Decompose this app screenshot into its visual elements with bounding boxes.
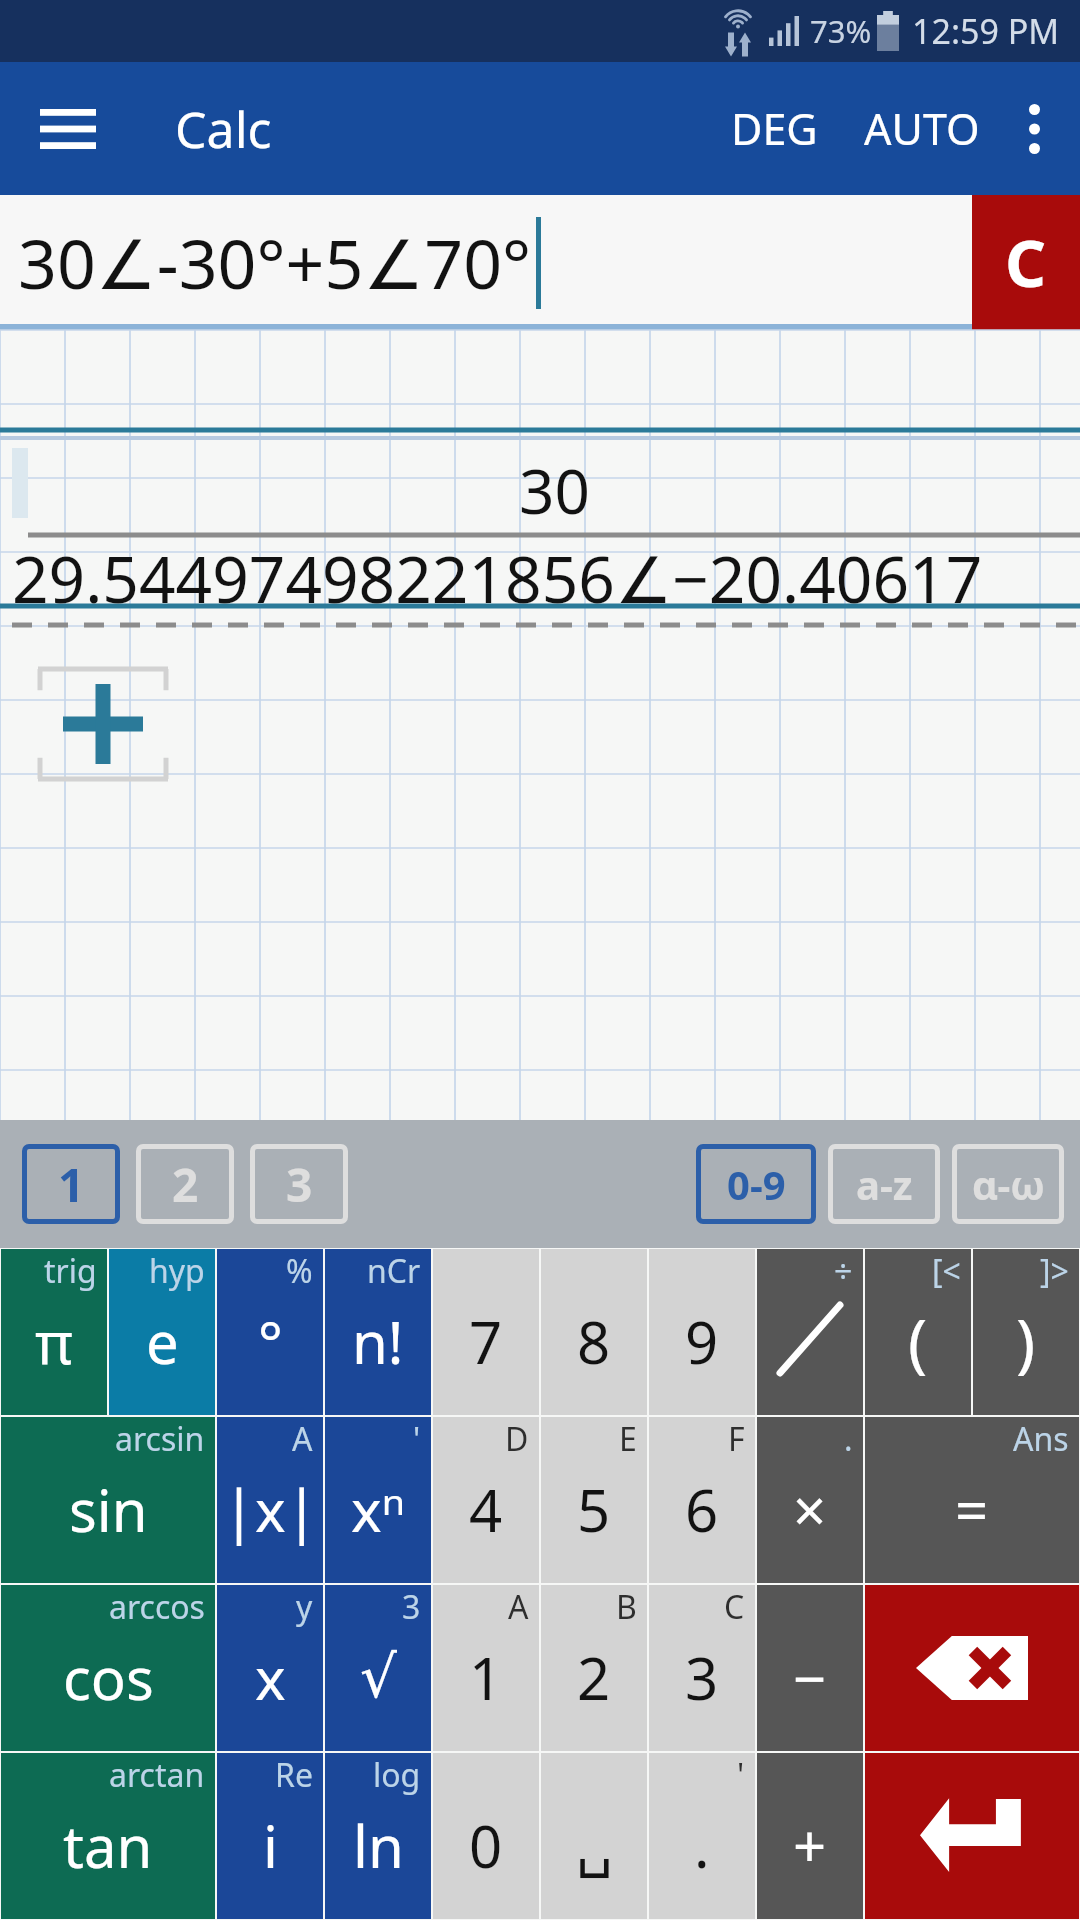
button[interactable]: Open navigation menu — [22, 83, 114, 175]
button[interactable]: ]> — [973, 1249, 1079, 1415]
button[interactable]: A — [433, 1585, 539, 1751]
staticText: hyp — [149, 1249, 205, 1293]
button[interactable]: 0-9 — [696, 1144, 816, 1224]
staticText: + — [793, 1806, 827, 1885]
button[interactable]: D — [433, 1417, 539, 1583]
staticText: E — [619, 1417, 637, 1461]
button[interactable]: 3 — [325, 1585, 431, 1751]
staticText: A — [292, 1417, 313, 1461]
staticText: 29.54497498221856∠−20.40617 — [12, 535, 983, 622]
staticText: 0 — [469, 1806, 503, 1885]
button[interactable]: log — [325, 1753, 431, 1919]
staticText: Ans — [1013, 1417, 1069, 1461]
button[interactable]: C — [972, 195, 1080, 330]
button[interactable]: nCr — [325, 1249, 431, 1415]
staticText: ]> — [1040, 1249, 1069, 1293]
staticText: cos — [63, 1638, 154, 1717]
staticText: arcsin — [115, 1417, 205, 1461]
staticText: 2 — [172, 1153, 199, 1216]
staticText: 8 — [577, 1302, 611, 1381]
button[interactable]: trig — [1, 1249, 107, 1415]
staticText: ln — [353, 1806, 404, 1885]
staticText: 0-9 — [727, 1157, 786, 1211]
staticText: ÷ — [834, 1249, 853, 1293]
button[interactable]: + — [757, 1753, 863, 1919]
button[interactable]: More options — [994, 89, 1074, 169]
staticText: √ — [360, 1643, 397, 1711]
button[interactable]: ␣ — [541, 1753, 647, 1919]
staticText: 1 — [58, 1153, 85, 1216]
staticText: a-z — [856, 1157, 913, 1211]
staticText: [< — [932, 1249, 961, 1293]
button[interactable]: 1 — [22, 1144, 120, 1224]
button[interactable]: 3 — [250, 1144, 348, 1224]
staticText: n! — [352, 1302, 404, 1381]
button[interactable]: − — [757, 1585, 863, 1751]
staticText: 30∠-30°+5∠70° — [18, 216, 532, 309]
staticText: DEG — [731, 99, 818, 158]
button[interactable]: ' — [325, 1417, 431, 1583]
button[interactable]: B — [541, 1585, 647, 1751]
staticText: C — [1005, 219, 1047, 306]
button[interactable]: Enter — [865, 1753, 1079, 1919]
button[interactable]: arccos — [1, 1585, 215, 1751]
staticText: sin — [69, 1470, 148, 1549]
button[interactable]: DEG — [717, 79, 832, 178]
staticText: ' — [737, 1753, 745, 1797]
button[interactable]: Divide — [757, 1249, 863, 1415]
staticText: 5 — [577, 1470, 611, 1549]
staticText: |x| — [223, 1470, 318, 1549]
button[interactable]: Re — [217, 1753, 323, 1919]
button[interactable]: % — [217, 1249, 323, 1415]
staticText: 9 — [685, 1302, 719, 1381]
staticText: % — [286, 1249, 313, 1293]
staticText: 6 — [685, 1470, 719, 1549]
button[interactable]: ɑ-ω — [952, 1144, 1064, 1224]
staticText: B — [616, 1585, 637, 1629]
staticText: log — [373, 1753, 421, 1797]
button[interactable]: hyp — [109, 1249, 215, 1415]
staticText: . — [844, 1417, 853, 1461]
staticText: nCr — [367, 1249, 421, 1293]
staticText: Re — [275, 1753, 313, 1797]
staticText: 2 — [577, 1638, 611, 1717]
staticText: F — [728, 1417, 745, 1461]
button[interactable]: 9 — [649, 1249, 755, 1415]
staticText: 7 — [469, 1302, 503, 1381]
button[interactable]: Ans — [865, 1417, 1079, 1583]
staticText: 3 — [402, 1585, 421, 1629]
staticText: 3 — [685, 1638, 719, 1717]
staticText: arccos — [109, 1585, 205, 1629]
button[interactable]: 2 — [136, 1144, 234, 1224]
button[interactable]: arctan — [1, 1753, 215, 1919]
button[interactable]: 7 — [433, 1249, 539, 1415]
staticText: π — [35, 1302, 73, 1381]
staticText: Calc — [175, 95, 272, 163]
staticText: ␣ — [576, 1811, 613, 1879]
button[interactable]: AUTO — [850, 79, 994, 178]
staticText: C — [724, 1585, 745, 1629]
button[interactable]: ' — [649, 1753, 755, 1919]
staticText: ( — [908, 1298, 928, 1385]
staticText: trig — [44, 1249, 97, 1293]
button[interactable]: . — [757, 1417, 863, 1583]
button[interactable]: 30∠-30°+5∠70° — [0, 195, 972, 330]
button[interactable]: F — [649, 1417, 755, 1583]
staticText: 4 — [469, 1470, 503, 1549]
button[interactable]: A — [217, 1417, 323, 1583]
staticText: 30 — [519, 448, 590, 532]
button[interactable]: y — [217, 1585, 323, 1751]
button[interactable]: Add new expression — [38, 665, 168, 783]
staticText: ) — [1016, 1298, 1036, 1385]
staticText: = — [955, 1470, 989, 1549]
button[interactable]: Backspace — [865, 1585, 1079, 1751]
staticText: ° — [258, 1302, 283, 1381]
button[interactable]: arcsin — [1, 1417, 215, 1583]
button[interactable]: a-z — [828, 1144, 940, 1224]
button[interactable]: 0 — [433, 1753, 539, 1919]
staticText: i — [263, 1806, 278, 1885]
button[interactable]: [< — [865, 1249, 971, 1415]
button[interactable]: C — [649, 1585, 755, 1751]
button[interactable]: E — [541, 1417, 647, 1583]
button[interactable]: 8 — [541, 1249, 647, 1415]
